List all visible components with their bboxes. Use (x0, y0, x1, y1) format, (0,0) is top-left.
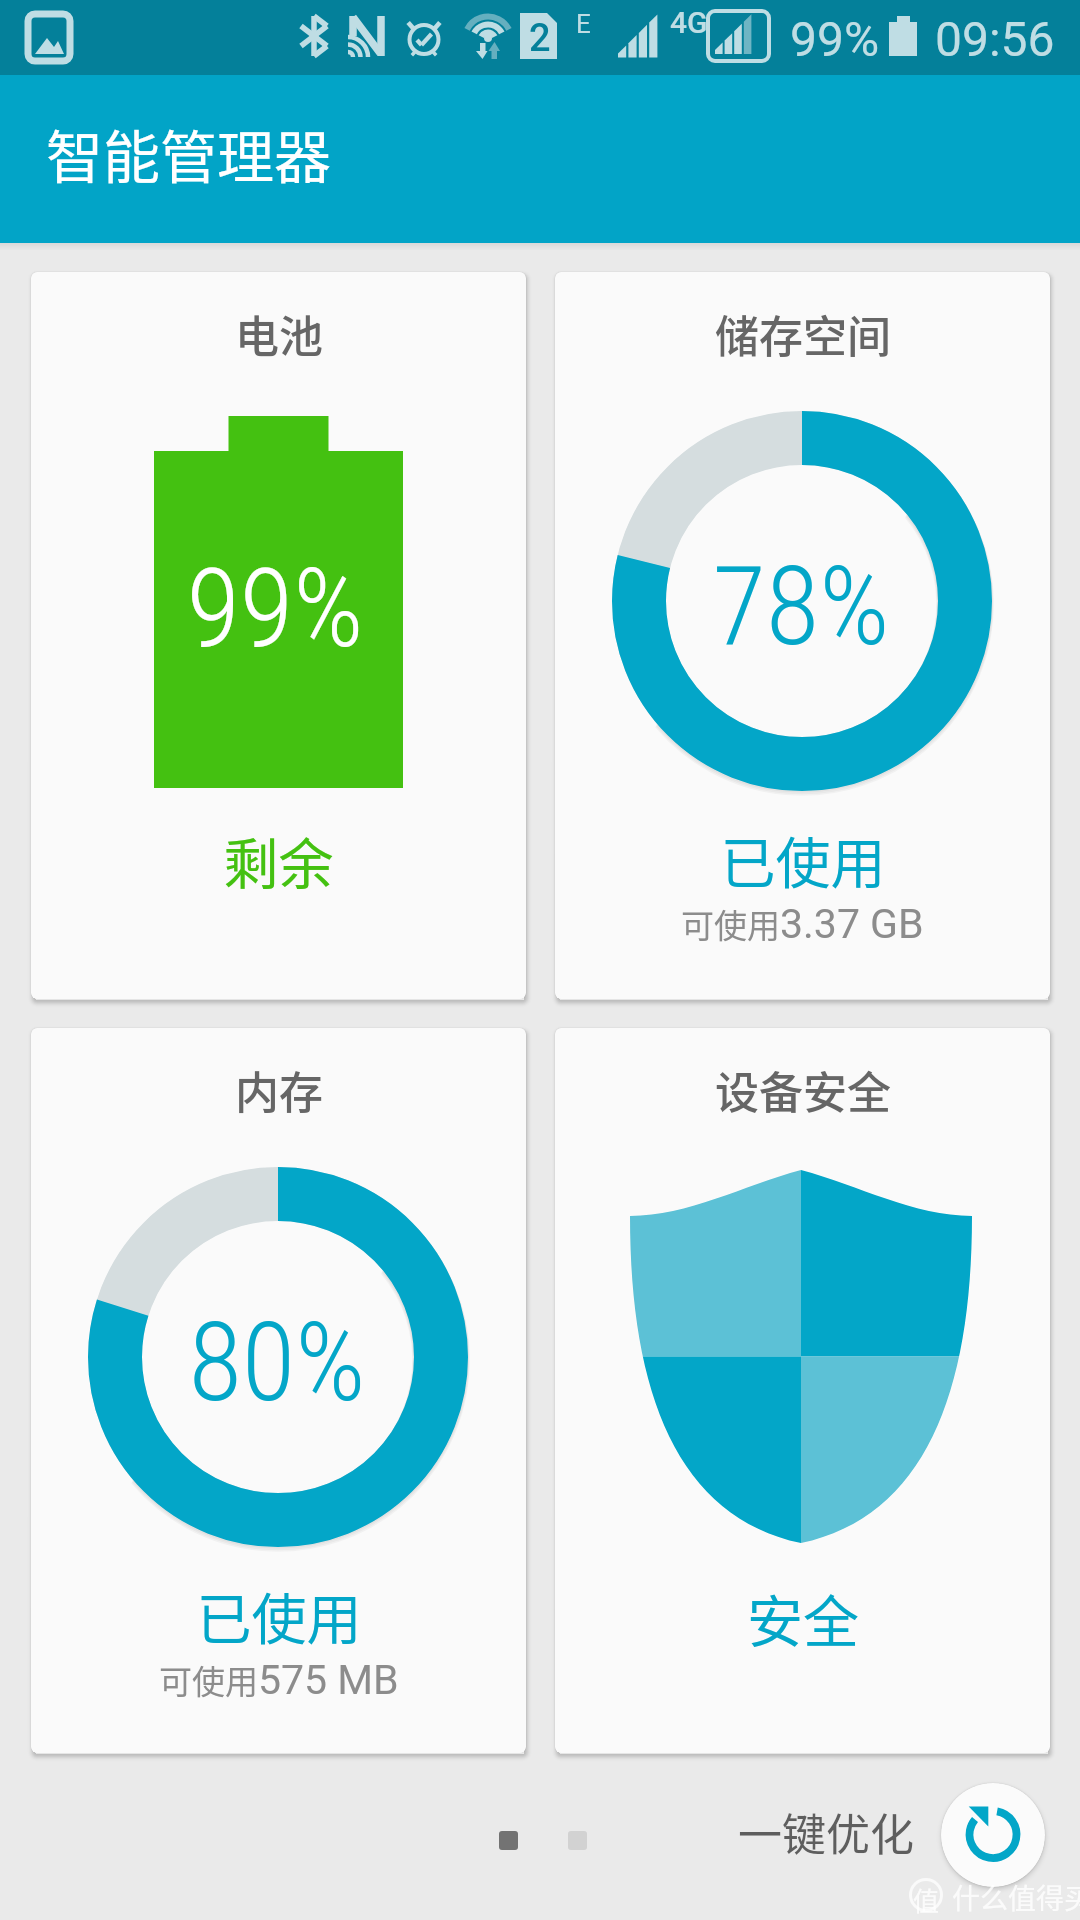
staticText: 安全 (747, 1577, 859, 1658)
staticText: 99% (790, 11, 880, 67)
staticText: 智能管理器 (46, 112, 331, 195)
staticText: 80% (188, 1298, 366, 1427)
button[interactable]: Page 1 (499, 1831, 518, 1850)
staticText: 一键优化 (738, 1800, 914, 1864)
button[interactable]: 一键优化 (730, 1795, 922, 1869)
staticText: 什么值得买 (952, 1877, 1080, 1918)
staticText: 设备安全 (715, 1058, 891, 1122)
staticText: 内存 (235, 1058, 323, 1122)
staticText: 可使用 (681, 900, 780, 948)
staticText: 储存空间 (715, 302, 891, 366)
button[interactable]: 内存 (31, 1028, 526, 1753)
staticText: 78% (712, 542, 890, 671)
staticText: 已使用 (720, 819, 886, 899)
button[interactable]: 储存空间 (555, 272, 1050, 999)
staticText: 剩余 (223, 820, 334, 900)
staticText: 09:56 (935, 11, 1055, 67)
button[interactable]: 设备安全 (555, 1028, 1050, 1753)
staticText: 575 MB (258, 1656, 399, 1704)
staticText: 值 (913, 1881, 940, 1919)
staticText: 2 (529, 16, 551, 61)
button[interactable]: 电池 (31, 272, 526, 999)
button[interactable]: 一键优化 (941, 1783, 1045, 1887)
staticText: 已使用 (196, 1575, 362, 1655)
staticText: 99% (186, 544, 364, 673)
staticText: 电池 (235, 302, 323, 366)
staticText: 4G (670, 5, 708, 40)
staticText: 3.37 GB (780, 900, 924, 948)
staticText: E (576, 9, 591, 39)
staticText: 可使用 (159, 1656, 258, 1704)
